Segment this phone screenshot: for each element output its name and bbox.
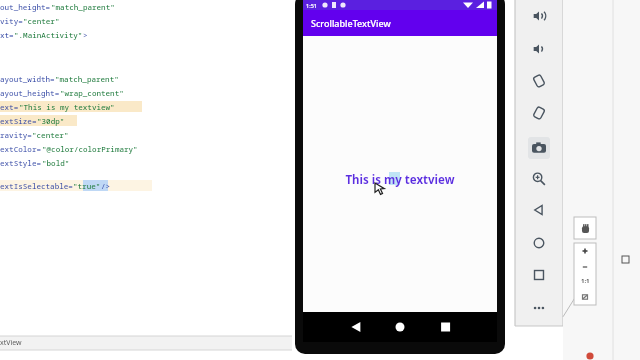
staticText: ayout_height= — [0, 88, 60, 98]
button[interactable]: Zoom out — [574, 259, 596, 274]
button[interactable]: Zoom in — [574, 243, 596, 258]
staticText: extSize= — [0, 116, 37, 126]
button[interactable]: Device File Explorer — [618, 252, 634, 356]
button[interactable]: Volume down — [528, 38, 550, 60]
staticText: "30dp" — [37, 116, 65, 126]
staticText: "This is my textview" — [19, 102, 115, 112]
staticText: extColor= — [0, 144, 42, 154]
staticText: xt= — [0, 30, 14, 40]
staticText: ScrollableTextView — [311, 17, 391, 29]
button[interactable]: Overview — [528, 264, 550, 286]
button[interactable]: Rotate left — [528, 70, 550, 92]
button[interactable]: Volume up — [528, 5, 550, 27]
staticText: extStyle= — [0, 158, 42, 168]
staticText: Device File Explorer — [621, 216, 630, 276]
staticText: > — [83, 30, 88, 40]
button[interactable]: Zoom to fit — [574, 289, 596, 304]
staticText: out_height= — [0, 2, 51, 12]
staticText: 1:51 — [306, 2, 317, 9]
button[interactable]: Take screenshot — [528, 137, 550, 159]
staticText: "match_parent" — [55, 74, 119, 84]
staticText: xtView — [0, 338, 22, 348]
button[interactable]: Home — [528, 232, 550, 254]
button[interactable]: Pan — [574, 217, 596, 239]
staticText: vity= — [0, 16, 23, 26]
button[interactable]: xtView — [0, 336, 292, 350]
staticText: 1:1 — [581, 277, 590, 285]
staticText: "bold" — [42, 158, 70, 168]
staticText: "true" — [73, 181, 101, 191]
button[interactable]: Rotate right — [528, 102, 550, 124]
staticText: "@color/colorPrimary" — [42, 144, 138, 154]
button[interactable]: 1:1 — [574, 274, 596, 288]
button[interactable]: ScrollableTextView — [303, 10, 497, 36]
staticText: ravity= — [0, 130, 32, 140]
staticText: "wrap_content" — [60, 88, 124, 98]
staticText: extIsSelectable= — [0, 181, 73, 191]
staticText: "center" — [23, 16, 60, 26]
staticText: "center" — [32, 130, 69, 140]
staticText: "match_parent" — [51, 2, 115, 12]
button[interactable]: More options — [528, 297, 550, 319]
staticText: ayout_width= — [0, 74, 55, 84]
staticText: /> — [101, 181, 111, 191]
staticText: ".MainActivity" — [14, 30, 83, 40]
staticText: ext= — [0, 102, 19, 112]
button[interactable]: Back — [528, 199, 550, 221]
staticText: This is my textview — [303, 172, 497, 188]
button[interactable]: Zoom — [528, 168, 550, 190]
